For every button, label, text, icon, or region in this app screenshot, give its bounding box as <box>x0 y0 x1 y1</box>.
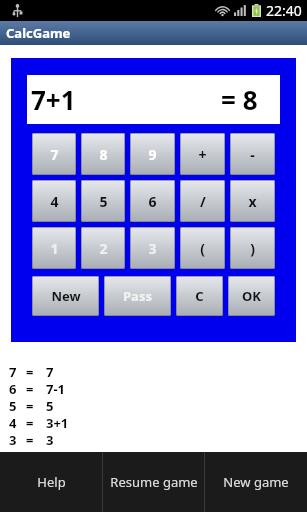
button[interactable]: 5 <box>9 397 307 414</box>
staticText: Resume game <box>110 473 198 491</box>
staticText: = <box>26 397 46 414</box>
staticText: 7+1 <box>31 82 76 117</box>
button[interactable]: C <box>176 276 223 316</box>
staticText: 7 <box>50 145 59 164</box>
button[interactable]: 3 <box>130 227 175 269</box>
staticText: 6 <box>9 380 26 397</box>
staticText: Help <box>37 473 66 491</box>
button[interactable]: Help <box>0 452 102 512</box>
button[interactable]: 4 <box>32 180 76 222</box>
staticText: 6 <box>148 192 157 211</box>
staticText: 9 <box>148 145 157 164</box>
staticText: 8 <box>99 145 108 164</box>
staticText: 7 <box>9 363 26 380</box>
staticText: = <box>26 414 46 431</box>
button[interactable]: Resume game <box>103 452 204 512</box>
staticText: 7-1 <box>46 380 66 397</box>
staticText: 5 <box>46 397 54 414</box>
staticText: / <box>200 192 206 211</box>
staticText: 3 <box>148 239 157 258</box>
button[interactable]: 2 <box>81 227 125 269</box>
staticText: ) <box>250 239 255 258</box>
button[interactable]: 3 <box>9 431 307 448</box>
staticText: 5 <box>99 192 108 211</box>
staticText: - <box>250 145 255 164</box>
button[interactable]: 7 <box>9 363 307 380</box>
button[interactable]: New game <box>205 452 307 512</box>
button[interactable]: OK <box>228 276 275 316</box>
staticText: 2 <box>99 239 108 258</box>
staticText: = <box>26 363 46 380</box>
staticText: 22:40 <box>266 1 302 20</box>
staticText: = <box>26 431 46 448</box>
staticText: = <box>26 380 46 397</box>
button[interactable]: 9 <box>130 133 175 175</box>
button[interactable]: 6 <box>9 380 307 397</box>
button[interactable]: ) <box>230 227 275 269</box>
button[interactable]: / <box>180 180 225 222</box>
button[interactable]: New <box>32 276 99 316</box>
staticText: CalcGame <box>6 24 71 42</box>
button[interactable]: ( <box>180 227 225 269</box>
staticText: 1 <box>50 239 59 258</box>
button[interactable]: 1 <box>32 227 76 269</box>
staticText: 3+1 <box>46 414 69 431</box>
staticText: 7 <box>46 363 54 380</box>
staticText: 3 <box>46 431 54 448</box>
button[interactable]: 7 <box>32 133 76 175</box>
button[interactable]: + <box>180 133 225 175</box>
button[interactable]: - <box>230 133 275 175</box>
staticText: 4 <box>50 192 59 211</box>
staticText: 3 <box>9 431 26 448</box>
staticText: OK <box>242 287 261 305</box>
staticText: New game <box>223 473 289 491</box>
button[interactable]: 5 <box>81 180 125 222</box>
staticText: C <box>195 287 204 305</box>
staticText: 5 <box>9 397 26 414</box>
button[interactable]: 6 <box>130 180 175 222</box>
button[interactable]: Pass <box>104 276 171 316</box>
staticText: + <box>198 145 207 164</box>
staticText: Pass <box>123 287 152 305</box>
button[interactable]: 4 <box>9 414 307 431</box>
staticText: = 8 <box>221 82 258 117</box>
button[interactable]: x <box>230 180 275 222</box>
staticText: x <box>248 192 257 211</box>
staticText: 4 <box>9 414 26 431</box>
staticText: New <box>51 287 81 305</box>
staticText: ( <box>200 239 205 258</box>
button[interactable]: 8 <box>81 133 125 175</box>
